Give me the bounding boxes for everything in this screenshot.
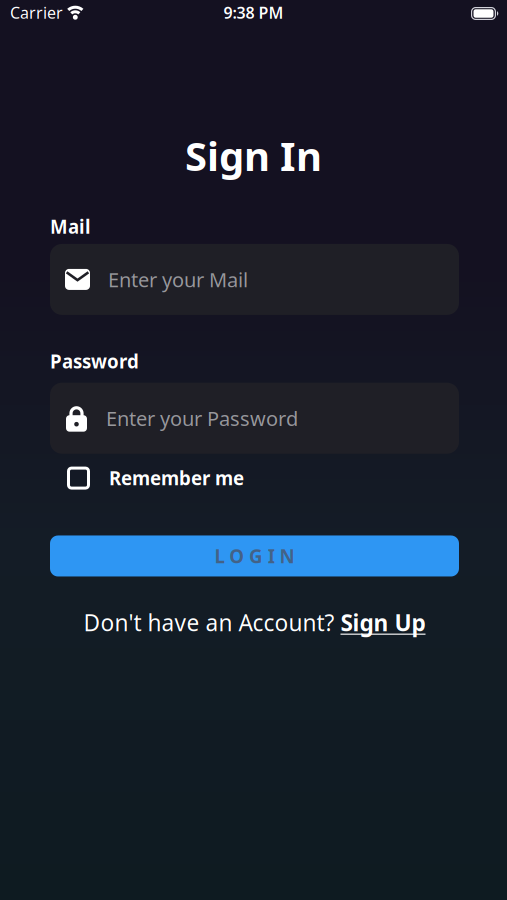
staticText: 9:38 PM <box>223 2 283 23</box>
textField[interactable]: Enter your Mail <box>108 266 459 293</box>
staticText: LOGIN <box>214 544 295 568</box>
staticText: Don't have an Account? <box>83 607 340 638</box>
button[interactable]: Sign Up <box>340 607 425 638</box>
staticText: Password <box>50 349 139 374</box>
staticText: Enter your Mail <box>108 266 248 293</box>
staticText: Remember me <box>109 466 244 490</box>
secureTextField[interactable]: Enter your Password <box>106 405 459 431</box>
staticText: Carrier <box>10 2 63 23</box>
button[interactable]: Remember me <box>50 466 459 490</box>
staticText: Enter your Password <box>106 405 298 431</box>
staticText: Sign Up <box>340 607 425 638</box>
button[interactable]: LOGIN <box>50 535 459 576</box>
staticText: Sign In <box>185 129 322 182</box>
staticText: Mail <box>50 214 91 239</box>
